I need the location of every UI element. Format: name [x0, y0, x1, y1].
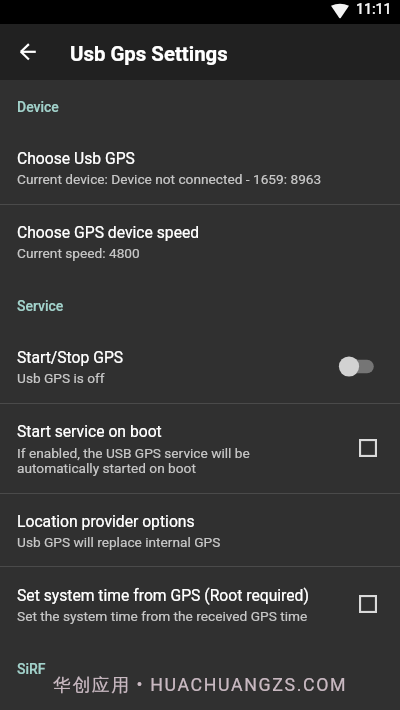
staticText: 华创应用 • HUACHUANGZS.COM — [53, 674, 348, 696]
staticText: Set the system time from the received GP… — [17, 608, 308, 624]
staticText: Usb Gps Settings — [70, 42, 228, 66]
staticText: Usb GPS will replace internal GPS — [17, 534, 221, 550]
staticText: Set system time from GPS (Root required) — [17, 586, 309, 604]
staticText: Start/Stop GPS — [17, 348, 124, 366]
staticText: SiRF — [17, 661, 46, 677]
staticText: Start service on boot — [17, 422, 162, 440]
staticText: Usb GPS is off — [17, 370, 105, 386]
button[interactable]: Back — [4, 28, 52, 76]
button[interactable] — [0, 494, 400, 566]
staticText: Current speed: 4800 — [17, 245, 140, 261]
staticText: If enabled, the USB GPS service will be … — [17, 445, 250, 476]
staticText: Choose Usb GPS — [17, 149, 135, 167]
button[interactable] — [0, 331, 400, 403]
button[interactable] — [0, 404, 400, 493]
staticText: Choose GPS device speed — [17, 223, 200, 241]
staticText: 11:11 — [356, 1, 392, 17]
staticText: Service — [17, 298, 64, 314]
staticText: Device — [17, 99, 59, 115]
staticText: Current device: Device not connected - 1… — [17, 171, 322, 187]
button[interactable] — [0, 567, 400, 639]
button[interactable] — [0, 205, 400, 273]
button[interactable] — [0, 132, 400, 204]
staticText: Location provider options — [17, 512, 195, 530]
